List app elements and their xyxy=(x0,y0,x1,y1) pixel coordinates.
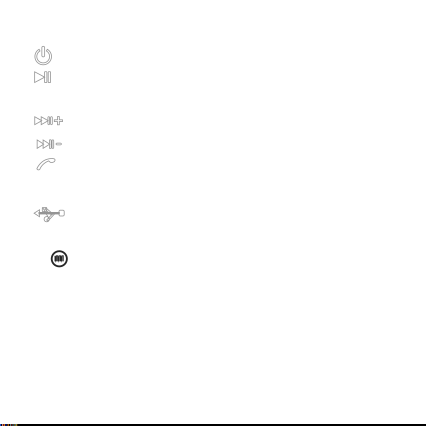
button[interactable]: Radio xyxy=(50,250,68,268)
button[interactable]: Power xyxy=(34,46,53,66)
button[interactable]: Volume down xyxy=(37,139,62,149)
button[interactable]: Phone xyxy=(35,158,55,171)
button[interactable]: Volume up xyxy=(34,116,64,125)
button[interactable]: Play or pause xyxy=(34,71,52,83)
button[interactable]: USB xyxy=(33,206,64,222)
